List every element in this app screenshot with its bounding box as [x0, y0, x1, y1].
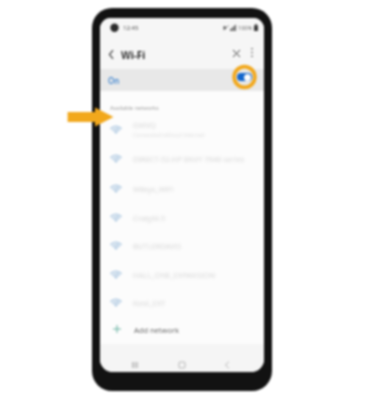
button[interactable]: DIRECT-52-HP ENVY 7640 series [100, 143, 264, 172]
button[interactable]: Home [174, 357, 190, 372]
button[interactable]: Add network [100, 316, 264, 343]
button[interactable]: Wi-Fi toggle [230, 66, 259, 88]
button[interactable]: Back [104, 48, 117, 61]
button[interactable]: More options [245, 46, 258, 59]
button[interactable]: Wileys_WiFi [100, 173, 264, 202]
button[interactable]: Recents [127, 357, 143, 372]
staticText: Add network [134, 325, 180, 335]
staticText: DIRECT-52-HP ENVY 7640 series [133, 154, 245, 164]
button[interactable]: Scan QR code [230, 47, 243, 60]
staticText: Nest_EXT [133, 298, 166, 308]
staticText: Available networks [110, 104, 159, 111]
staticText: Wileys_WiFi [133, 184, 174, 194]
staticText: GWVQ [133, 120, 156, 130]
button[interactable]: Nest_EXT [100, 287, 264, 316]
button[interactable]: On [100, 69, 264, 91]
staticText: 100% [238, 24, 253, 31]
staticText: CraigM-5 [133, 213, 165, 223]
button[interactable]: BUTLERDAVIS [100, 230, 264, 259]
staticText: BUTLERDAVIS [133, 241, 182, 251]
staticText: HALL_ONE_EXPANSION [133, 270, 216, 280]
button[interactable]: Back [219, 357, 235, 372]
button[interactable]: GWVQ [100, 114, 264, 143]
staticText: 12:45 [123, 24, 139, 32]
staticText: Wi-Fi [121, 48, 146, 62]
staticText: On [108, 75, 120, 86]
button[interactable]: HALL_ONE_EXPANSION [100, 259, 264, 288]
button[interactable]: CraigM-5 [100, 202, 264, 231]
